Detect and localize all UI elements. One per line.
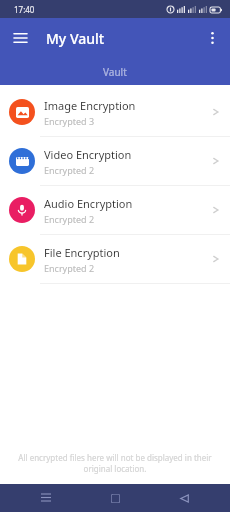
staticText: Encrypted 2 xyxy=(44,213,95,225)
button[interactable]: Image Encryption xyxy=(0,88,230,136)
button[interactable]: More options xyxy=(200,26,224,50)
staticText: Encrypted 3 xyxy=(44,115,95,127)
staticText: Audio Encryption xyxy=(44,196,133,211)
staticText: File Encryption xyxy=(44,245,120,260)
button[interactable]: Vault xyxy=(0,58,230,85)
staticText: Encrypted 2 xyxy=(44,262,95,274)
button[interactable]: Home xyxy=(103,486,127,510)
button[interactable]: File Encryption xyxy=(0,235,230,283)
button[interactable]: Recent apps xyxy=(34,486,58,510)
staticText: 17:40 xyxy=(14,4,35,15)
staticText: Vault xyxy=(103,65,127,79)
staticText: Image Encryption xyxy=(44,98,136,113)
staticText: My Vault xyxy=(46,29,105,48)
button[interactable]: Video Encryption xyxy=(0,137,230,185)
staticText: Encrypted 2 xyxy=(44,164,95,176)
staticText: Video Encryption xyxy=(44,147,132,162)
button[interactable]: Open navigation menu xyxy=(8,26,32,50)
staticText: All encrypted files here will not be dis… xyxy=(14,452,216,474)
button[interactable]: Back xyxy=(172,486,196,510)
button[interactable]: Audio Encryption xyxy=(0,186,230,234)
